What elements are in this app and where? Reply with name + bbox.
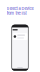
staticText: Select a Device from the list — [6, 6, 33, 16]
